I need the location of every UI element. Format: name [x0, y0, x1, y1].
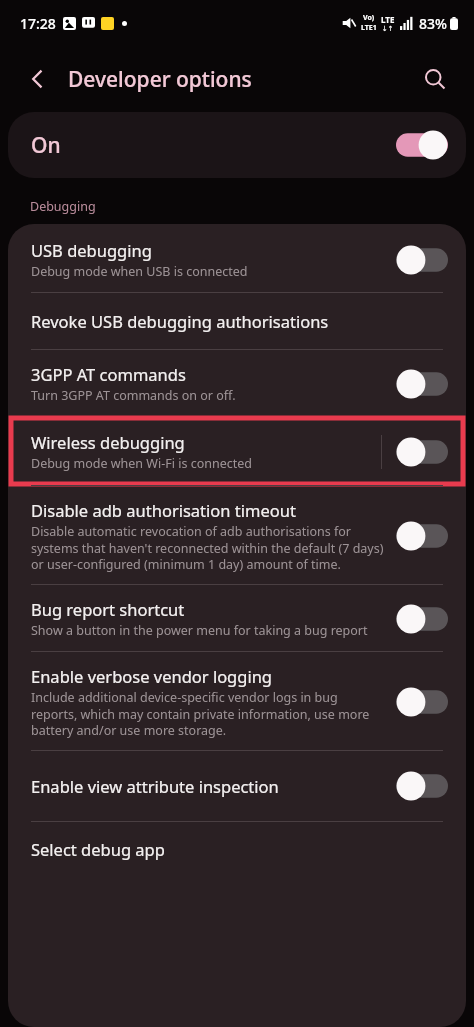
button[interactable]: Enable view attribute inspection	[392, 767, 452, 805]
staticText: 3GPP AT commands	[31, 363, 186, 385]
button[interactable]: On	[8, 112, 466, 178]
button[interactable]: 3GPP AT commands	[392, 365, 452, 403]
button[interactable]: Enable view attribute inspection	[8, 751, 466, 821]
staticText: Select debug app	[31, 838, 165, 860]
button[interactable]: 3GPP AT commands	[8, 350, 466, 416]
staticText: Wireless debugging	[31, 431, 185, 453]
button[interactable]: Back	[18, 59, 58, 99]
button[interactable]: Revoke USB debugging authorisations	[8, 293, 466, 349]
button[interactable]: USB debugging	[392, 241, 452, 279]
staticText: Debugging	[30, 198, 96, 215]
staticText: Debug mode when Wi-Fi is connected	[31, 455, 252, 472]
staticText: Enable view attribute inspection	[31, 775, 279, 797]
staticText: USB debugging	[31, 239, 152, 261]
staticText: Show a button in the power menu for taki…	[31, 622, 368, 639]
button[interactable]: Wireless debugging	[8, 417, 466, 485]
staticText: Turn 3GPP AT commands on or off.	[31, 387, 236, 404]
staticText: LTE1	[361, 23, 377, 33]
staticText: Bug report shortcut	[31, 598, 185, 620]
button[interactable]: Select debug app	[8, 822, 466, 878]
button[interactable]: Disable adb authorisation timeout	[8, 486, 466, 584]
button[interactable]: Enable verbose vendor logging	[8, 652, 466, 750]
staticText: Debug mode when USB is connected	[31, 263, 248, 280]
staticText: Revoke USB debugging authorisations	[31, 310, 329, 332]
staticText: LTE	[381, 14, 395, 25]
staticText: 17:28	[20, 14, 56, 33]
button[interactable]: Search	[414, 58, 456, 100]
button[interactable]: Disable adb authorisation timeout	[392, 517, 452, 555]
staticText: Enable verbose vendor logging	[31, 665, 273, 687]
button[interactable]: Wireless debugging	[392, 433, 452, 471]
staticText: Include additional device-specific vendo…	[31, 689, 384, 738]
button[interactable]: Bug report shortcut	[8, 585, 466, 651]
staticText: Developer options	[68, 65, 252, 94]
button[interactable]: Bug report shortcut	[392, 600, 452, 638]
staticText: Disable automatic revocation of adb auth…	[31, 523, 384, 572]
staticText: On	[31, 131, 61, 160]
staticText: 83%	[419, 14, 447, 33]
staticText: Vo)	[363, 13, 375, 23]
staticText: ↓↑	[382, 25, 394, 33]
button[interactable]: USB debugging	[8, 224, 466, 292]
staticText: Disable adb authorisation timeout	[31, 499, 296, 521]
button[interactable]: Enable verbose vendor logging	[392, 683, 452, 721]
